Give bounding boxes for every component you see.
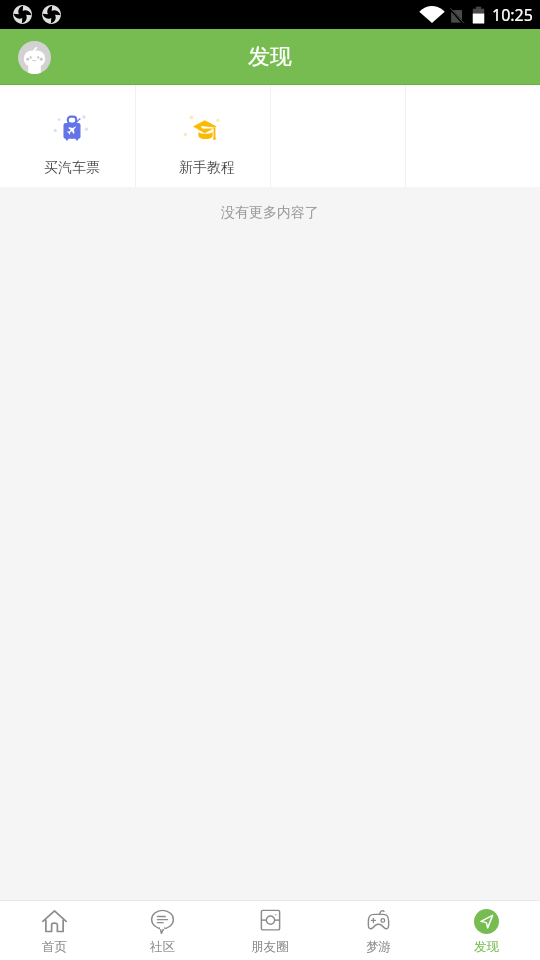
staticText: 发现 bbox=[248, 43, 292, 71]
button[interactable]: 发现 bbox=[432, 901, 540, 960]
staticText: 社区 bbox=[150, 939, 175, 955]
button[interactable]: 买汽车票 bbox=[0, 85, 135, 187]
button[interactable]: 梦游 bbox=[324, 901, 432, 960]
button[interactable]: 新手教程 bbox=[136, 85, 270, 187]
staticText: 买汽车票 bbox=[44, 159, 100, 177]
staticText: 10:25 bbox=[492, 4, 533, 26]
button[interactable]: 社区 bbox=[108, 901, 216, 960]
staticText: 没有更多内容了 bbox=[221, 204, 319, 222]
button[interactable]: Profile bbox=[18, 41, 51, 74]
staticText: 梦游 bbox=[366, 939, 391, 955]
button[interactable]: 朋友圈 bbox=[216, 901, 324, 960]
staticText: 首页 bbox=[42, 939, 67, 955]
button[interactable]: 首页 bbox=[0, 901, 108, 960]
staticText: 发现 bbox=[474, 939, 499, 955]
staticText: 朋友圈 bbox=[251, 939, 289, 955]
staticText: 新手教程 bbox=[179, 159, 235, 177]
